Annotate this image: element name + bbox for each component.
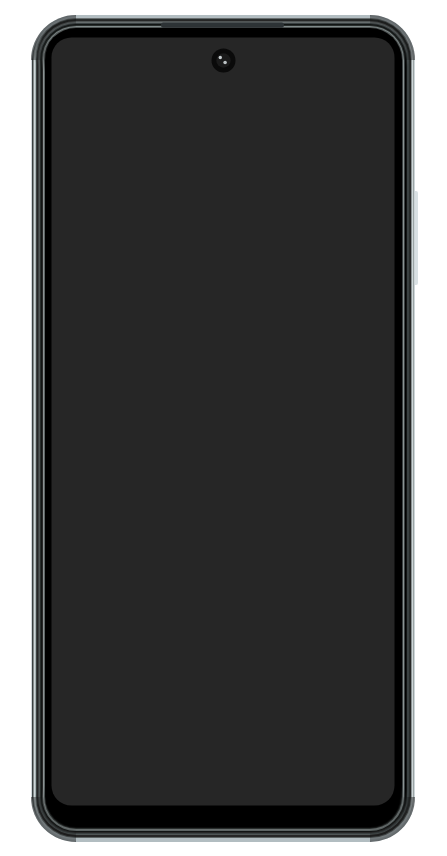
button[interactable]: Smartphone front view product photo: [0, 0, 447, 856]
